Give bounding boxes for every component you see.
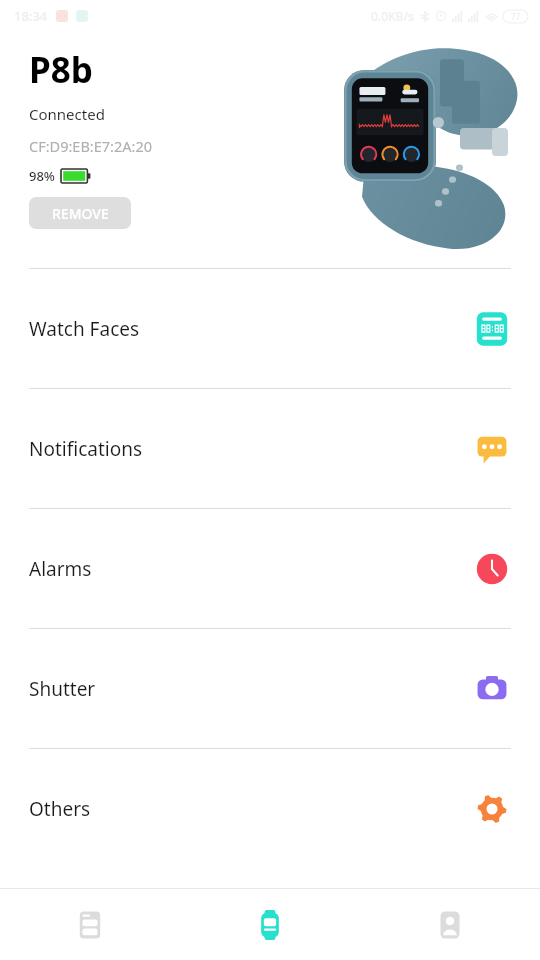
staticText: 98% bbox=[29, 167, 55, 185]
staticText: Others bbox=[29, 796, 91, 822]
button[interactable]: Watch Faces bbox=[0, 269, 540, 388]
button[interactable]: Cards bbox=[0, 889, 180, 960]
staticText: Shutter bbox=[29, 676, 96, 702]
button[interactable]: Profile bbox=[360, 889, 540, 960]
button[interactable]: REMOVE bbox=[29, 197, 131, 229]
staticText: P8b bbox=[29, 46, 93, 94]
button[interactable]: Notifications bbox=[0, 389, 540, 508]
button[interactable]: Alarms bbox=[0, 509, 540, 628]
staticText: Watch Faces bbox=[29, 316, 140, 342]
button[interactable]: Device bbox=[180, 889, 360, 960]
staticText: 77 bbox=[511, 11, 521, 22]
staticText: Notifications bbox=[29, 436, 143, 462]
button[interactable]: Shutter bbox=[0, 629, 540, 748]
staticText: 0.0KB/s bbox=[371, 8, 414, 24]
staticText: Alarms bbox=[29, 556, 92, 582]
staticText: Connected bbox=[29, 104, 105, 124]
button[interactable]: Others bbox=[0, 749, 540, 868]
staticText: 18:34 bbox=[14, 7, 48, 25]
staticText: REMOVE bbox=[52, 204, 109, 223]
staticText: CF:D9:EB:E7:2A:20 bbox=[29, 136, 152, 156]
